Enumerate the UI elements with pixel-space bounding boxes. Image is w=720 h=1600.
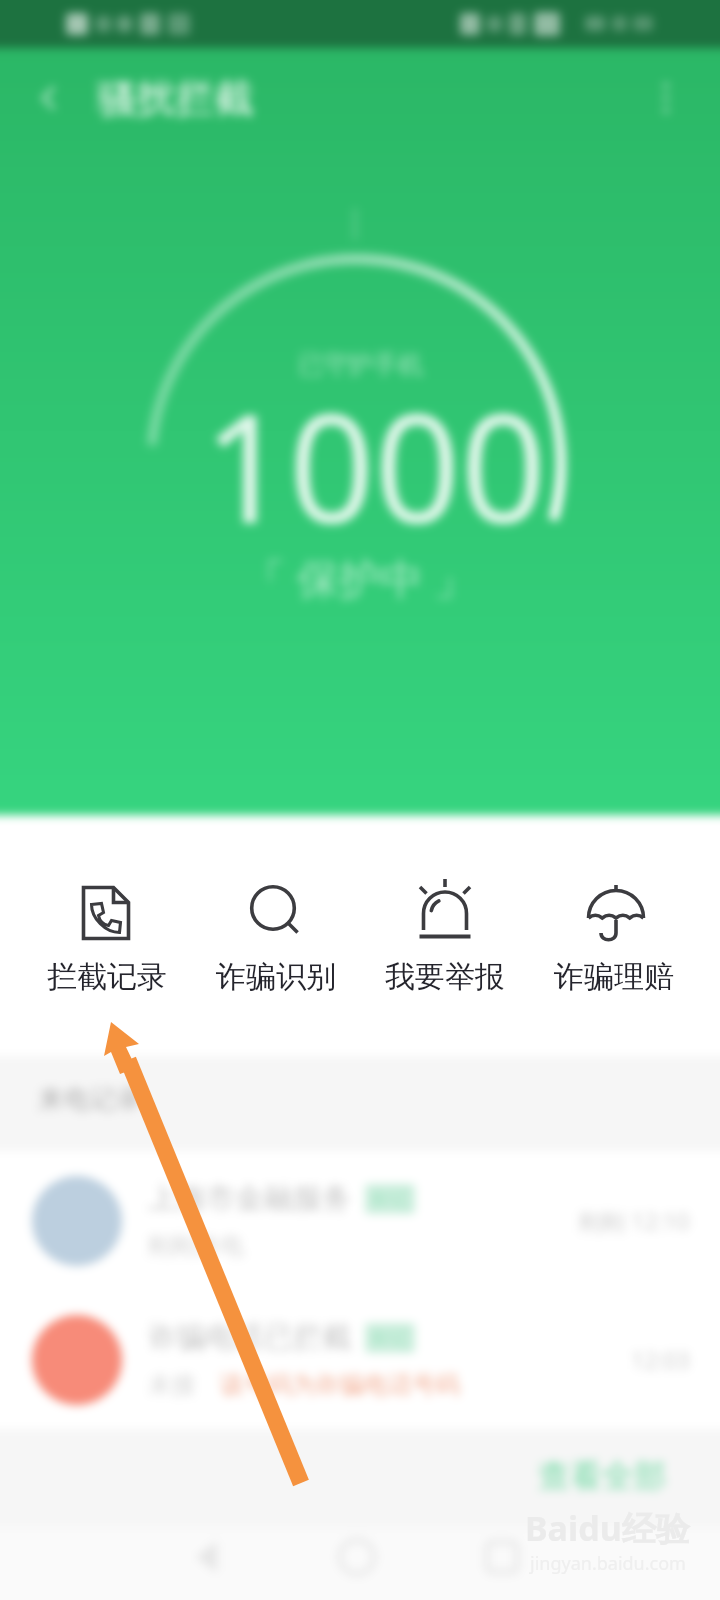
button[interactable]: More options [618, 50, 714, 146]
staticText: jingyan.baidu.com [530, 1551, 686, 1576]
staticText: 骚扰拦截 [97, 74, 253, 123]
button[interactable]: 上海市金融服务 [0, 1151, 720, 1290]
staticText: 标记 [371, 1326, 409, 1350]
staticText: 「 保护中 」 [244, 549, 476, 606]
staticText: 我要举报 [385, 958, 505, 996]
staticText: 刚刚 12:10 [579, 1205, 690, 1236]
staticText: 诈骗电话已拦截 [148, 1319, 351, 1356]
button[interactable]: 诈骗电话已拦截 [0, 1290, 720, 1429]
button[interactable]: 诈骗识别 [191, 877, 360, 985]
staticText: 已守护手机 [298, 349, 423, 380]
staticText: 来电记录 [38, 1083, 142, 1116]
button[interactable]: 诈骗理赔 [529, 877, 698, 985]
staticText: 诈骗理赔 [554, 958, 674, 996]
button[interactable]: 查看全部 [538, 1456, 666, 1496]
button[interactable]: 拦截记录 [23, 877, 191, 985]
staticText: 12:03 [631, 1344, 690, 1375]
staticText: 未接 [148, 1370, 196, 1400]
staticText: Baidu经验 [525, 1505, 690, 1551]
staticText: 刚刚来电 [148, 1231, 244, 1261]
staticText: 标记 [371, 1187, 409, 1211]
staticText: 1000 [203, 363, 547, 567]
staticText: 上海市金融服务 [148, 1180, 351, 1217]
staticText: 诈骗识别 [216, 958, 336, 996]
button[interactable]: 我要举报 [360, 877, 529, 985]
button[interactable]: Back [0, 50, 96, 146]
staticText: 该号码为诈骗电话号码 [220, 1370, 460, 1400]
staticText: 拦截记录 [47, 958, 167, 996]
